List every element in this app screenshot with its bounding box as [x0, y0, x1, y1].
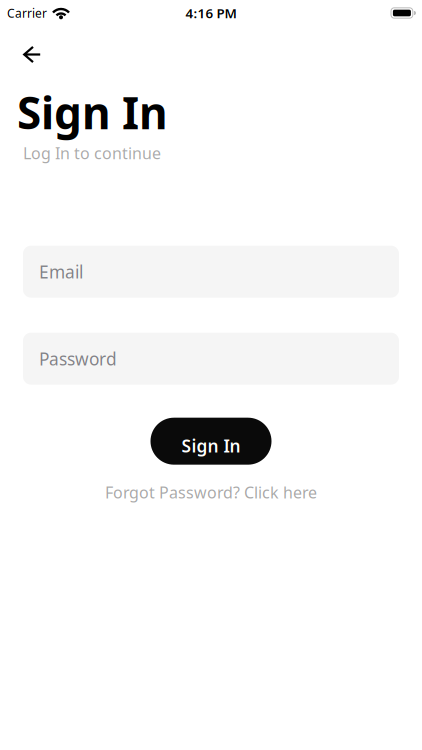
- staticText: Email: [39, 260, 83, 283]
- staticText: Sign In: [17, 83, 168, 141]
- staticText: Forgot Password? Click here: [105, 482, 317, 503]
- staticText: Carrier: [7, 5, 47, 21]
- staticText: Log In to continue: [23, 142, 161, 164]
- staticText: Sign In: [181, 434, 240, 457]
- staticText: 4:16 PM: [185, 4, 236, 22]
- staticText: Password: [39, 347, 117, 370]
